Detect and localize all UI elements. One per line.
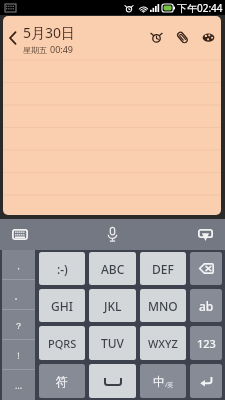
staticText: 符 — [56, 374, 68, 389]
button[interactable] — [89, 364, 136, 398]
button[interactable]: DEF — [140, 252, 186, 285]
staticText: WXYZ — [148, 336, 178, 351]
staticText: ？ — [14, 320, 23, 331]
staticText: /英 — [165, 381, 174, 389]
staticText: ， — [14, 260, 23, 271]
button[interactable]: Back — [3, 16, 23, 59]
button[interactable]: Switch keyboard — [0, 219, 39, 250]
button[interactable]: Reminder — [143, 16, 169, 59]
staticText: 下午02:44 — [177, 1, 223, 15]
button[interactable]: :-) — [39, 252, 85, 285]
button[interactable]: Colour — [195, 16, 221, 59]
button[interactable]: ！ — [2, 340, 35, 370]
button[interactable]: WXYZ — [140, 326, 186, 360]
staticText: … — [15, 379, 23, 391]
button[interactable]: ab — [190, 289, 222, 322]
staticText: JKL — [104, 298, 122, 314]
button[interactable]: Hide keyboard — [186, 219, 225, 250]
staticText: ！ — [14, 350, 23, 361]
staticText: PQRS — [48, 336, 77, 351]
staticText: GHI — [51, 298, 73, 314]
button[interactable]: … — [2, 370, 35, 400]
staticText: 5月30日 — [23, 23, 76, 42]
button[interactable]: Attach — [169, 16, 195, 59]
staticText: MNO — [148, 298, 178, 314]
button[interactable]: 符 — [39, 364, 85, 398]
button[interactable]: MNO — [140, 289, 186, 322]
button[interactable]: Voice input — [93, 219, 132, 250]
button[interactable] — [190, 252, 222, 285]
button[interactable]: GHI — [39, 289, 85, 322]
button[interactable]: TUV — [89, 326, 136, 360]
button[interactable]: JKL — [89, 289, 136, 322]
staticText: 00:49 — [50, 43, 74, 55]
button[interactable]: ABC — [89, 252, 136, 285]
button[interactable]: ， — [2, 250, 35, 280]
button[interactable]: ？ — [2, 310, 35, 340]
staticText: 123 — [197, 336, 216, 351]
button[interactable]: PQRS — [39, 326, 85, 360]
staticText: DEF — [152, 261, 174, 277]
staticText: :-) — [57, 261, 68, 277]
staticText: 星期五 — [23, 45, 47, 55]
staticText: ABC — [101, 261, 125, 277]
button[interactable]: 。 — [2, 280, 35, 310]
staticText: TUV — [101, 335, 124, 351]
button[interactable] — [190, 364, 222, 398]
staticText: 中 — [153, 374, 165, 389]
button[interactable]: 中 — [140, 364, 186, 398]
button[interactable]: 123 — [190, 326, 222, 360]
staticText: ab — [199, 298, 214, 314]
staticText: 。 — [14, 290, 23, 301]
